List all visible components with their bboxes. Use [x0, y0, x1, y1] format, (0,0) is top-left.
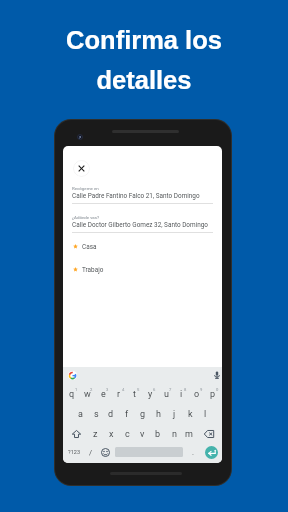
button[interactable]: n — [166, 426, 182, 442]
staticText: 1 — [75, 387, 78, 392]
staticText: e — [101, 389, 106, 400]
staticText: k — [188, 409, 193, 420]
button[interactable]: g — [135, 406, 151, 422]
staticText: 6 — [153, 387, 156, 392]
button[interactable]: Backspace — [198, 426, 220, 442]
staticText: 0 — [216, 387, 219, 392]
staticText: / — [89, 448, 93, 457]
staticText: 7 — [169, 387, 172, 392]
staticText: q — [69, 389, 75, 400]
button[interactable]: f — [119, 406, 135, 422]
button[interactable]: a — [72, 406, 88, 422]
staticText: p — [210, 389, 216, 400]
button[interactable]: s — [88, 406, 104, 422]
staticText: 9 — [200, 387, 203, 392]
staticText: . — [192, 448, 194, 457]
button[interactable]: x — [103, 426, 119, 442]
button[interactable]: m — [181, 426, 197, 442]
staticText: c — [125, 429, 130, 440]
staticText: f — [125, 409, 129, 420]
staticText: Casa — [82, 243, 97, 251]
staticText: s — [94, 409, 99, 420]
staticText: Confirma los detalles — [0, 26, 288, 94]
staticText: Calle Padre Fantino Falco 21, Santo Domi… — [72, 192, 200, 200]
staticText: n — [172, 429, 177, 440]
button[interactable]: k — [182, 406, 198, 422]
staticText: a — [78, 409, 83, 420]
staticText: b — [155, 429, 161, 440]
button[interactable]: Trabajo — [63, 262, 222, 277]
staticText: Recógeme en — [72, 186, 99, 191]
button[interactable]: . — [187, 444, 199, 460]
button[interactable]: 5 — [126, 386, 142, 402]
staticText: 3 — [106, 387, 109, 392]
staticText: r — [117, 389, 121, 400]
staticText: z — [93, 429, 98, 440]
staticText: j — [173, 409, 176, 420]
button[interactable]: c — [119, 426, 135, 442]
button[interactable]: Close — [73, 160, 90, 177]
button[interactable]: 3 — [95, 386, 111, 402]
staticText: ¿Adónde vas? — [72, 215, 100, 220]
button[interactable]: 4 — [111, 386, 127, 402]
button[interactable]: Shift — [65, 426, 87, 442]
button[interactable]: ¿Adónde vas? — [72, 215, 213, 233]
button[interactable]: 8 — [173, 386, 189, 402]
button[interactable]: d — [103, 406, 119, 422]
button[interactable]: h — [150, 406, 166, 422]
staticText: t — [133, 389, 136, 400]
staticText: d — [108, 409, 114, 420]
button[interactable]: Space — [112, 444, 186, 460]
staticText: 8 — [184, 387, 187, 392]
button[interactable]: b — [150, 426, 166, 442]
staticText: u — [164, 389, 169, 400]
button[interactable]: Google — [68, 371, 77, 380]
staticText: w — [84, 389, 91, 400]
staticText: h — [156, 409, 161, 420]
button[interactable]: l — [197, 406, 213, 422]
button[interactable]: j — [166, 406, 182, 422]
staticText: Trabajo — [82, 266, 104, 274]
button[interactable]: v — [134, 426, 150, 442]
button[interactable]: 6 — [142, 386, 158, 402]
staticText: ?123 — [68, 449, 81, 456]
button[interactable]: z — [87, 426, 103, 442]
staticText: l — [204, 409, 207, 420]
staticText: 5 — [137, 387, 140, 392]
staticText: 4 — [122, 387, 125, 392]
staticText: m — [185, 429, 193, 440]
button[interactable]: Enter — [201, 442, 221, 462]
button[interactable]: / — [84, 444, 98, 460]
staticText: 2 — [90, 387, 93, 392]
button[interactable]: 2 — [79, 386, 95, 402]
button[interactable]: Emoji — [98, 444, 112, 460]
button[interactable]: ?123 — [64, 444, 84, 460]
button[interactable]: 1 — [64, 386, 80, 402]
button[interactable]: Voice input — [212, 370, 222, 380]
staticText: x — [109, 429, 114, 440]
staticText: v — [140, 429, 145, 440]
button[interactable]: Recógeme en — [72, 186, 213, 204]
staticText: y — [148, 389, 153, 400]
staticText: o — [194, 389, 200, 400]
staticText: Calle Doctor Gilberto Gomez 32, Santo Do… — [72, 221, 208, 229]
staticText: i — [180, 389, 183, 400]
button[interactable]: 7 — [158, 386, 174, 402]
button[interactable]: 9 — [189, 386, 205, 402]
staticText: g — [140, 409, 146, 420]
button[interactable]: Casa — [63, 239, 222, 254]
button[interactable]: 0 — [205, 386, 221, 402]
